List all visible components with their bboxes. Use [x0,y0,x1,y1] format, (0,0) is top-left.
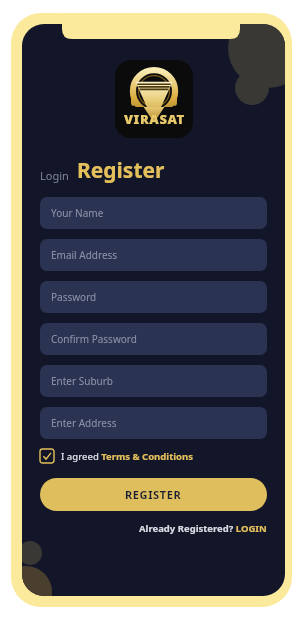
button[interactable]: Login [40,168,69,185]
staticText: REGISTER [125,487,182,502]
button[interactable]: Already Registered? LOGIN [139,522,267,535]
staticText: Email Address [51,248,118,262]
button[interactable]: Email Address [40,239,267,271]
other: Virasat logo [115,60,193,138]
staticText: I agreed Terms & Conditions [61,450,193,463]
staticText: VIRASAT [124,110,185,128]
button[interactable]: REGISTER [40,478,267,511]
button[interactable]: Password [40,281,267,313]
button[interactable]: Your Name [40,197,267,229]
button[interactable]: Enter Address [40,407,267,439]
staticText: Already Registered? LOGIN [139,522,267,535]
button[interactable]: Enter Suburb [40,365,267,397]
staticText: Your Name [51,206,104,220]
staticText: Confirm Password [51,332,137,346]
button[interactable]: Confirm Password [40,323,267,355]
staticText: Enter Address [51,416,117,430]
button[interactable]: I agreed Terms & Conditions [40,449,193,463]
staticText: Register [77,156,165,185]
staticText: Enter Suburb [51,374,113,388]
staticText: Password [51,290,97,304]
